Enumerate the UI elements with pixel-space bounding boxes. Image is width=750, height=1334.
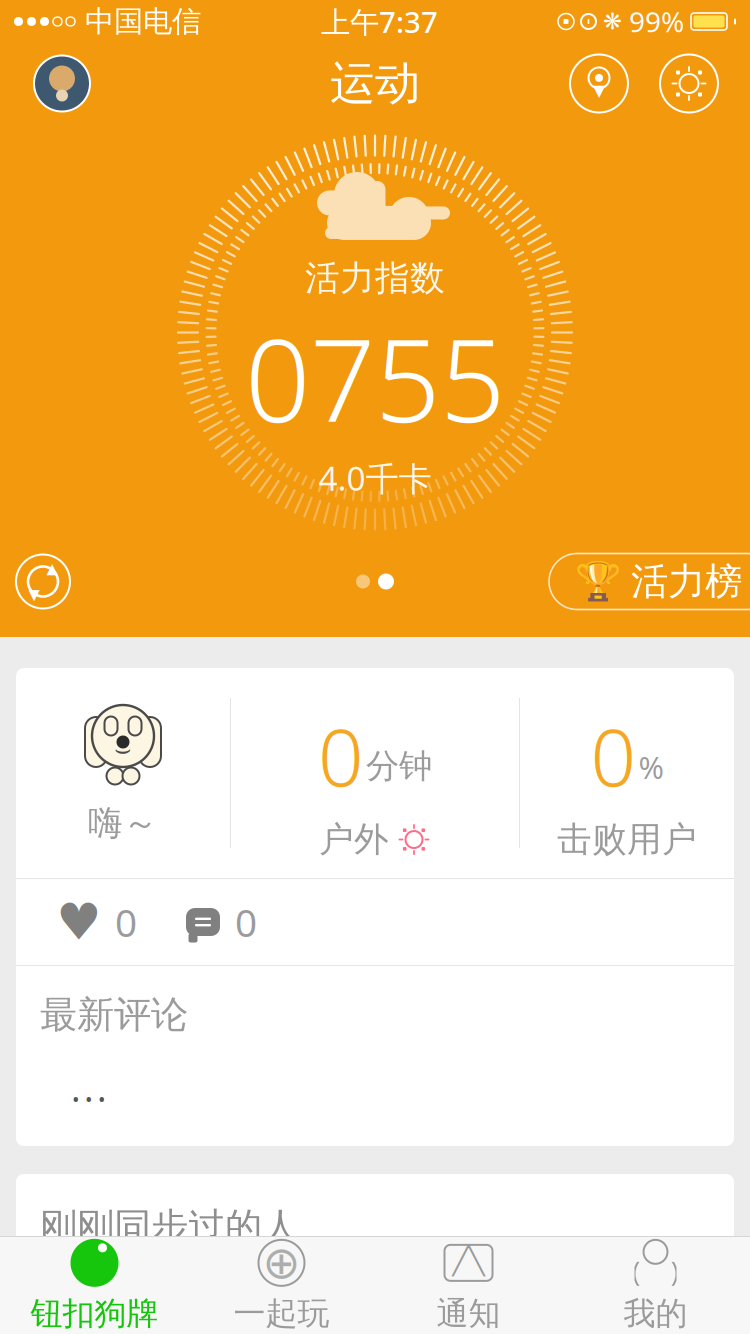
button[interactable]: 我的 (562, 1236, 749, 1334)
staticText: 我的 (623, 1294, 687, 1333)
staticText: 分钟 (366, 746, 432, 786)
button[interactable]: 同步 (12, 550, 74, 612)
button[interactable]: 个人头像 (30, 51, 94, 115)
staticText: 嗨～ (88, 802, 158, 845)
staticText: 刚刚同步过的人 (40, 1204, 299, 1250)
staticText: 通知 (436, 1294, 500, 1333)
staticText: 上午7:37 (321, 2, 438, 41)
staticText: ⊕ (262, 1237, 300, 1289)
staticText: 活力榜 (631, 559, 742, 604)
staticText: 0755 (245, 301, 505, 454)
staticText: 击败用户 (557, 818, 697, 861)
staticText: 0 (115, 896, 137, 948)
staticText: 99% (629, 3, 684, 40)
button[interactable]: 0 (520, 668, 734, 878)
staticText: ▼ (28, 586, 39, 603)
staticText: 0 (318, 702, 364, 808)
staticText: 活力指数 (305, 257, 445, 299)
button[interactable]: 🏆 (523, 553, 750, 609)
staticText: 钮扣狗牌 (30, 1294, 158, 1333)
button[interactable]: 位置 (568, 52, 630, 114)
button[interactable]: 天气 (658, 52, 720, 114)
staticText: 一起玩 (233, 1294, 329, 1333)
staticText: ▲ (46, 560, 57, 577)
staticText: 中国电信 (85, 3, 201, 39)
staticText: ♥ (56, 893, 101, 951)
staticText: 🏆 (575, 560, 621, 603)
button[interactable]: 0 (161, 879, 281, 965)
staticText: 户外 (319, 818, 389, 861)
staticText: ▼ (593, 81, 605, 100)
button[interactable]: ♥ (32, 879, 161, 965)
staticText: ❋ (603, 9, 622, 34)
staticText: 运动 (330, 56, 420, 111)
staticText: 最新评论 (40, 992, 188, 1038)
button[interactable]: ⌣ (16, 668, 230, 878)
staticText: • • • (72, 1086, 106, 1112)
staticText: ⌣ (114, 737, 132, 763)
staticText: ✉ (453, 1242, 484, 1284)
button[interactable]: ⊕ (188, 1236, 375, 1334)
button[interactable]: 钮扣狗牌 (1, 1236, 188, 1334)
staticText: 4.0千卡 (318, 456, 431, 500)
staticText: 0 (590, 702, 636, 808)
staticText: 0 (235, 896, 257, 948)
staticText: % (638, 747, 663, 787)
button[interactable]: ✉ (375, 1236, 562, 1334)
button[interactable]: 0 (231, 668, 519, 878)
staticText: ╱╲ (452, 1246, 484, 1276)
